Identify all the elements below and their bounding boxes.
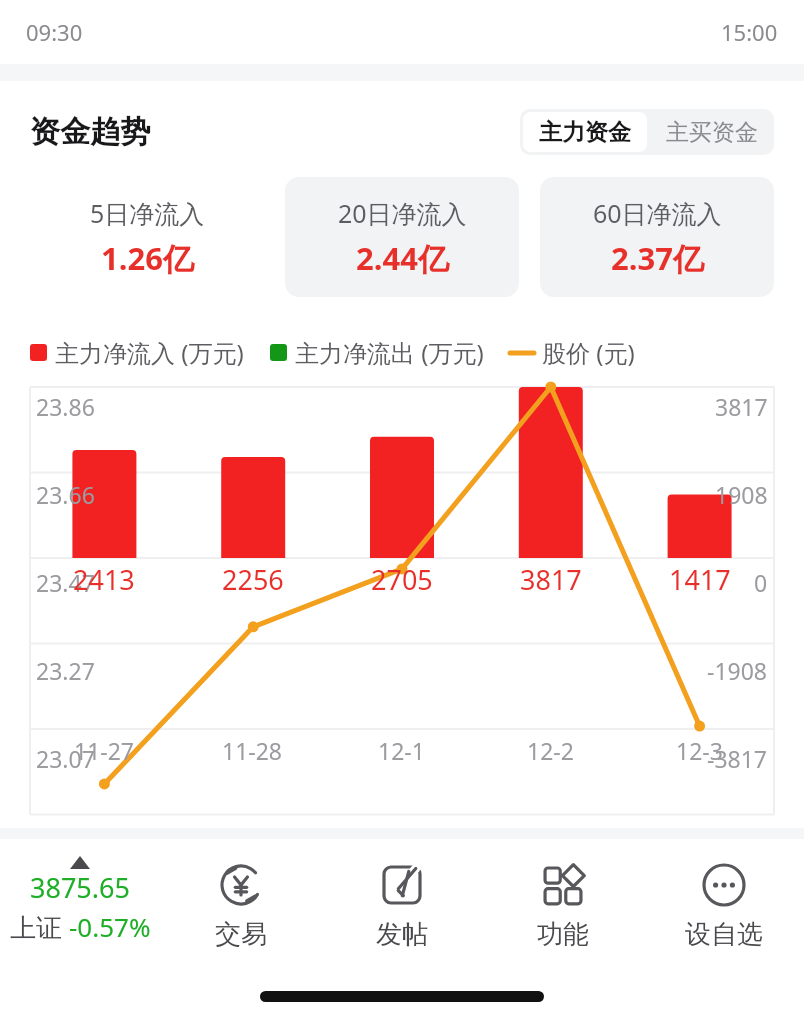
staticText: 11-28 [222, 735, 283, 766]
staticText: 1908 [715, 479, 768, 510]
staticText: 23.66 [36, 479, 95, 510]
button[interactable]: 功能 [482, 856, 643, 964]
staticText: 3817 [715, 391, 768, 422]
button[interactable]: 5日净流入 [30, 177, 264, 297]
staticText: 资金趋势 [30, 113, 150, 151]
staticText: 发帖 [376, 918, 428, 951]
staticText: 设自选 [685, 918, 763, 951]
staticText: 12-2 [527, 735, 574, 766]
staticText: 1.26亿 [101, 237, 194, 279]
staticText: 12-3 [676, 735, 723, 766]
staticText: 23.27 [36, 655, 95, 686]
staticText: 12-1 [378, 735, 425, 766]
staticText: 2.37亿 [611, 237, 704, 279]
staticText: -0.57% [69, 909, 151, 944]
staticText: 09:30 [26, 17, 83, 47]
staticText: 23.86 [36, 391, 95, 422]
staticText: 23.47 [36, 567, 95, 598]
staticText: 3817 [520, 561, 582, 598]
staticText: 主力净流出 (万元) [295, 336, 484, 369]
staticText: 主买资金 [666, 118, 758, 147]
button[interactable]: 设自选 [643, 856, 804, 964]
staticText: 3875.65 [30, 869, 130, 906]
staticText: 主力资金 [539, 118, 631, 147]
staticText: 2705 [371, 561, 433, 598]
staticText: 交易 [215, 918, 267, 951]
staticText: 20日净流入 [338, 196, 467, 230]
button[interactable]: 交易 [160, 856, 321, 964]
staticText: 5日净流入 [90, 196, 205, 230]
staticText: 15:00 [721, 17, 778, 47]
staticText: 1417 [669, 561, 731, 598]
staticText: 股价 (元) [542, 336, 635, 369]
staticText: -1908 [707, 655, 768, 686]
button[interactable]: 20日净流入 [285, 177, 519, 297]
button[interactable]: 发帖 [321, 856, 482, 964]
button[interactable]: 主买资金 [650, 109, 774, 155]
staticText: 2.44亿 [356, 237, 449, 279]
staticText: -3817 [707, 743, 768, 768]
button[interactable]: 主力资金 [523, 112, 647, 152]
staticText: 23.07 [36, 743, 95, 768]
staticText: 2256 [222, 561, 284, 598]
staticText: 功能 [537, 918, 589, 951]
button[interactable]: 3875.65 [0, 856, 160, 964]
staticText: 上证 [10, 909, 69, 945]
button[interactable]: 60日净流入 [540, 177, 774, 297]
staticText: 2413 [73, 561, 135, 598]
staticText: 11-27 [74, 735, 135, 766]
staticText: 主力净流入 (万元) [55, 336, 244, 369]
staticText: 60日净流入 [593, 196, 722, 230]
staticText: 0 [754, 567, 768, 598]
